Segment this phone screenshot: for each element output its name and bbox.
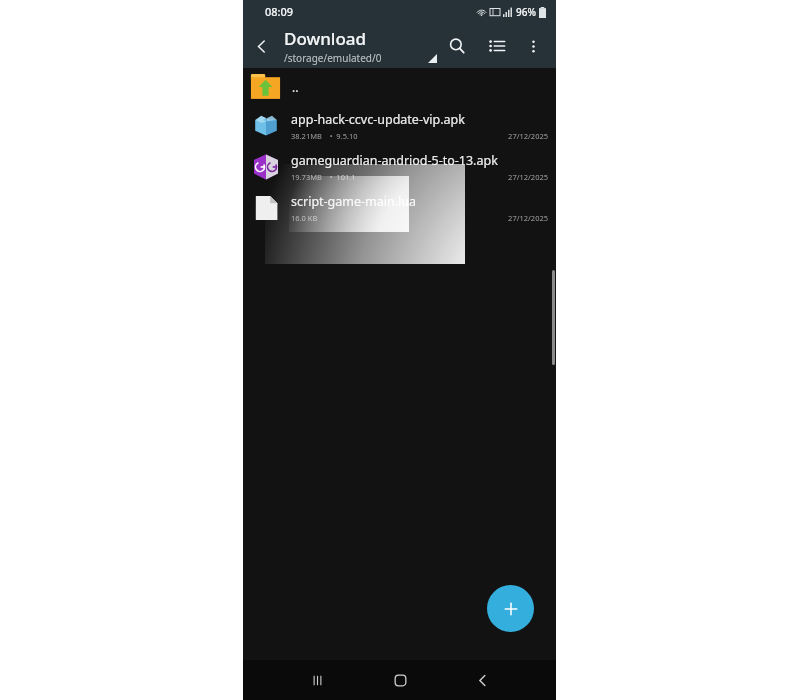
staticText: 16.0 KB — [291, 213, 318, 223]
staticText: 19.73MB • 101.1 — [291, 172, 356, 182]
staticText: script-game-main.lua — [291, 193, 417, 210]
button[interactable]: View mode — [480, 29, 514, 63]
button[interactable]: Search — [440, 29, 474, 63]
staticText: 27/12/2025 — [508, 172, 548, 182]
button[interactable]: Back — [243, 28, 279, 64]
staticText: 27/12/2025 — [508, 131, 548, 141]
button[interactable]: app-hack-ccvc-update-vip.apk — [243, 105, 556, 146]
staticText: 08:09 — [265, 4, 294, 19]
button[interactable]: Home — [380, 660, 420, 700]
staticText: 96% — [516, 5, 536, 19]
button[interactable]: Add — [487, 585, 534, 632]
staticText: 27/12/2025 — [508, 213, 548, 223]
button[interactable]: Back — [462, 660, 502, 700]
button[interactable]: gameguardian-andriod-5-to-13.apk — [243, 146, 556, 187]
staticText: gameguardian-andriod-5-to-13.apk — [291, 152, 498, 169]
staticText: Download — [284, 27, 367, 50]
staticText: .. — [292, 79, 299, 95]
button[interactable]: .. — [243, 68, 556, 105]
button[interactable]: Recents — [297, 660, 337, 700]
staticText: /storage/emulated/0 — [284, 51, 382, 65]
button[interactable]: script-game-main.lua — [243, 187, 556, 228]
button[interactable]: More options — [516, 29, 550, 63]
staticText: 38.21MB • 9.5.10 — [291, 131, 358, 141]
staticText: app-hack-ccvc-update-vip.apk — [291, 111, 465, 128]
